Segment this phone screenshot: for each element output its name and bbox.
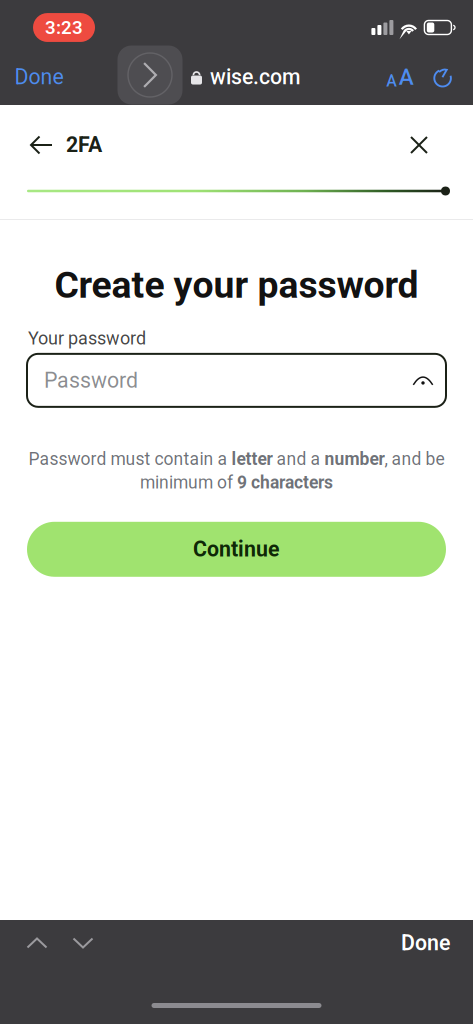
staticText: Your password xyxy=(28,328,146,349)
button[interactable]: 2FA xyxy=(0,118,116,172)
staticText: 2FA xyxy=(66,132,102,157)
button[interactable]: Previous field xyxy=(0,921,59,965)
staticText: A xyxy=(399,64,414,90)
staticText: Done xyxy=(401,930,450,955)
staticText: Create your password xyxy=(54,263,418,307)
button[interactable]: Next field xyxy=(59,921,105,965)
button[interactable]: Done xyxy=(401,921,473,965)
button[interactable]: Forward xyxy=(117,45,182,104)
button[interactable]: Page settings xyxy=(378,52,422,102)
staticText: minimum of 9 characters xyxy=(140,472,333,493)
staticText: Password xyxy=(44,368,138,393)
button[interactable]: Show password xyxy=(400,355,446,405)
button[interactable]: Done xyxy=(0,52,78,102)
staticText: A xyxy=(386,71,397,90)
staticText: Done xyxy=(14,64,63,89)
button[interactable]: Continue xyxy=(0,522,473,577)
staticText: wise.com xyxy=(210,64,301,89)
button[interactable]: Close xyxy=(393,118,473,172)
staticText: Continue xyxy=(193,537,280,562)
button[interactable]: Reload xyxy=(422,52,464,102)
staticText: Password must contain a letter and a num… xyxy=(28,449,444,469)
staticText: 3:23 xyxy=(45,17,83,38)
